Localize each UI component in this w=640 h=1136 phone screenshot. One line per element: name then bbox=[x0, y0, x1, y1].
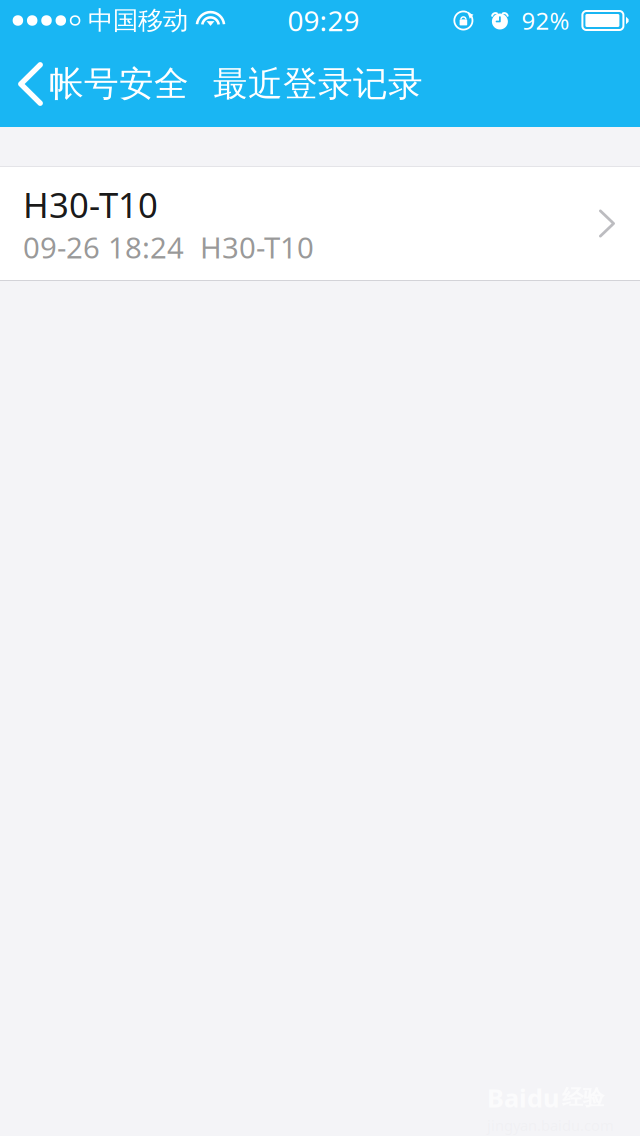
button[interactable]: 帐号安全 bbox=[0, 52, 195, 116]
staticText: H30-T10 bbox=[23, 181, 158, 227]
staticText: 中国移动 bbox=[88, 5, 188, 36]
staticText: 09:29 bbox=[287, 2, 359, 39]
staticText: 最近登录记录 bbox=[213, 63, 423, 105]
staticText: 09-26 18:24 H30-T10 bbox=[23, 227, 314, 266]
button[interactable]: H30-T10 bbox=[0, 167, 640, 280]
staticText: 帐号安全 bbox=[49, 63, 189, 105]
staticText: 92% bbox=[521, 5, 569, 36]
